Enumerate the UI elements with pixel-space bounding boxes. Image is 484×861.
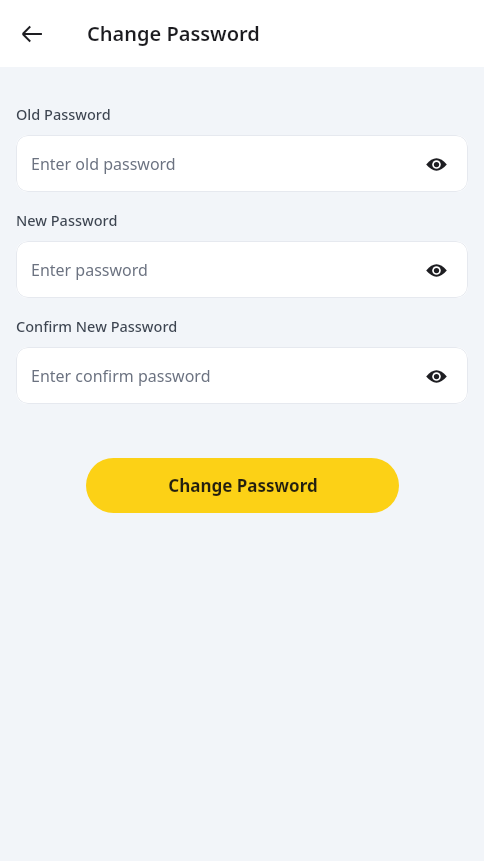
button[interactable]: Show password — [422, 150, 450, 178]
button[interactable]: Enter confirm password — [16, 347, 468, 404]
button[interactable]: Show password — [422, 362, 450, 390]
staticText: Enter password — [31, 259, 422, 281]
button[interactable]: Enter old password — [16, 135, 468, 192]
staticText: Old Password — [16, 104, 111, 124]
staticText: Confirm New Password — [16, 316, 178, 336]
button[interactable]: Change Password — [86, 458, 399, 513]
button[interactable]: Back — [12, 14, 52, 54]
staticText: Enter confirm password — [31, 365, 422, 387]
staticText: Enter old password — [31, 153, 422, 175]
staticText: Change Password — [87, 20, 260, 47]
button[interactable]: Enter password — [16, 241, 468, 298]
staticText: Change Password — [168, 474, 318, 497]
button[interactable]: Show password — [422, 256, 450, 284]
staticText: New Password — [16, 210, 118, 230]
